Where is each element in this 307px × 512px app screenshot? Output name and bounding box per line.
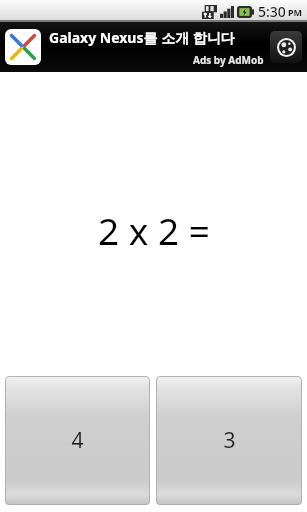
button[interactable]: Advertisement: Galaxy Nexus	[0, 22, 307, 72]
staticText: 5:30	[258, 2, 286, 21]
button[interactable]: 4	[5, 376, 150, 505]
staticText: PM	[288, 6, 303, 18]
staticText: Galaxy Nexus를 소개 합니다	[49, 28, 235, 47]
button[interactable]: Open ad in browser	[270, 31, 302, 63]
staticText: Ads by AdMob	[193, 53, 264, 67]
staticText: 3	[223, 426, 236, 455]
button[interactable]: 3	[156, 376, 302, 505]
staticText: 2 x 2 =	[98, 205, 210, 255]
staticText: 4	[71, 426, 84, 455]
